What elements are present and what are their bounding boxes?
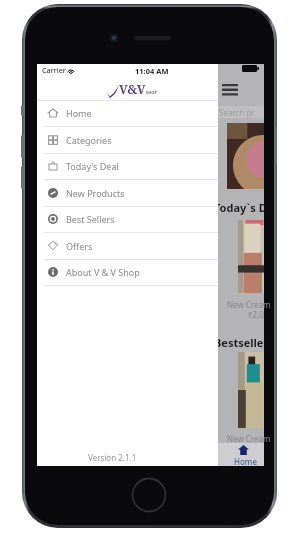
staticText: Home [66, 107, 92, 119]
staticText: About V & V Shop [66, 266, 140, 278]
button[interactable]: Home [37, 100, 218, 127]
button[interactable]: New Products [37, 180, 218, 207]
button[interactable]: Search pr [214, 106, 264, 118]
staticText: Search pr [219, 107, 255, 118]
other: Battery [242, 65, 259, 72]
button[interactable]: Home tab [216, 443, 264, 466]
staticText: Version 2.1.1 [88, 452, 137, 463]
staticText: Today's Deal [66, 160, 119, 172]
staticText: Best Sellers [66, 213, 115, 225]
staticText: SHOP [146, 90, 157, 95]
staticText: 11:04 AM [135, 66, 169, 76]
staticText: Home [234, 456, 258, 467]
button[interactable]: About V & V Shop [37, 259, 218, 286]
staticText: New Products [66, 187, 125, 199]
staticText: V&V [119, 81, 146, 98]
button[interactable] [226, 217, 264, 326]
staticText: New Cream [227, 299, 271, 310]
button[interactable]: Today's Deal [37, 153, 218, 180]
button[interactable]: Best Sellers [37, 206, 218, 233]
staticText: Today`s D [214, 200, 267, 215]
staticText: Offers [66, 240, 93, 252]
button[interactable] [226, 351, 264, 440]
button[interactable]: Offers [37, 233, 218, 260]
staticText: Carrier [42, 65, 66, 75]
staticText: ₹2,0 [248, 309, 264, 320]
button[interactable]: Open navigation drawer [222, 84, 238, 95]
staticText: Categories [66, 134, 112, 146]
staticText: Bestseller [214, 335, 269, 350]
button[interactable]: Categories [37, 127, 218, 154]
staticText: New Cream [227, 433, 271, 444]
